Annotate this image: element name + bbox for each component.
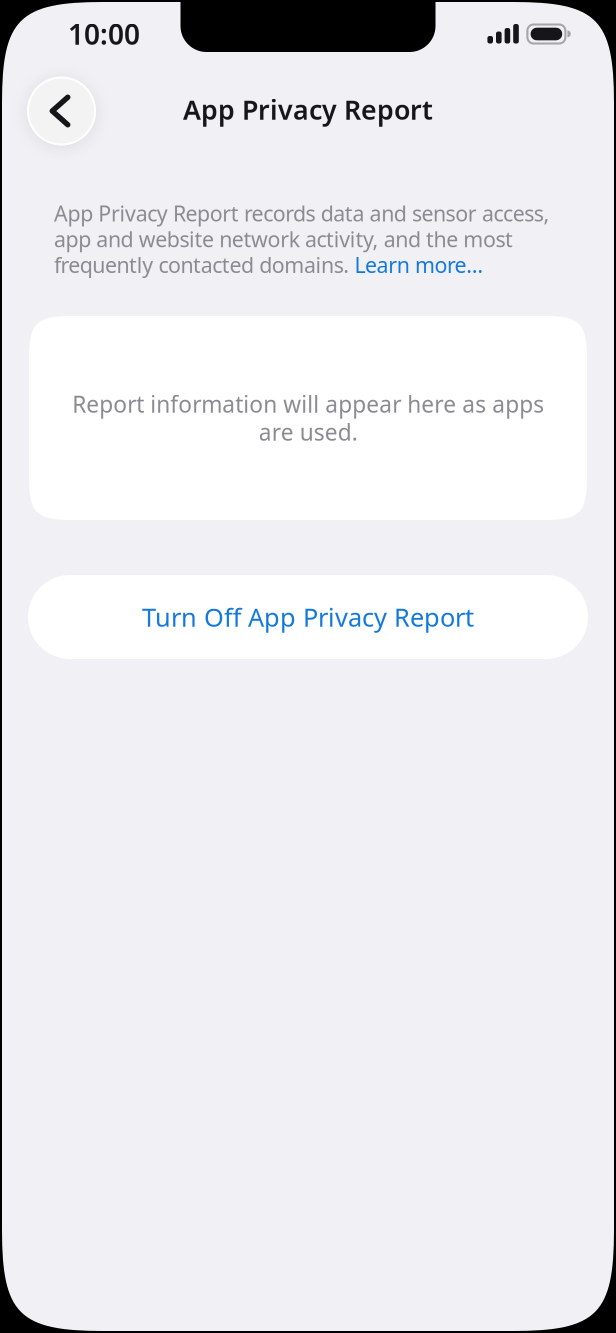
staticText: Report information will appear here as a… [72,389,544,447]
staticText: Turn Off App Privacy Report [142,600,474,634]
button[interactable]: Turn Off App Privacy Report [28,575,588,659]
staticText: App Privacy Report records data and sens… [54,199,549,279]
staticText: App Privacy Report [183,92,433,127]
staticText: 10:00 [68,15,140,53]
button[interactable]: Back [27,66,96,145]
